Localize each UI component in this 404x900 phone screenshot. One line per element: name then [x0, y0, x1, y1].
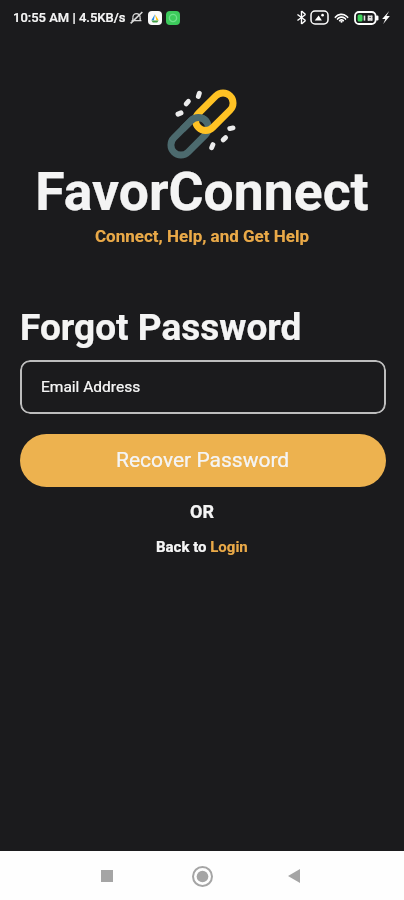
staticText: Forgot Password: [20, 306, 302, 349]
button[interactable]: Home: [181, 855, 223, 897]
staticText: OR: [0, 501, 404, 522]
staticText: Recover Password: [116, 448, 290, 473]
button[interactable]: Back: [273, 855, 315, 897]
staticText: FavorConnect: [0, 160, 404, 223]
button[interactable]: Recover Password: [20, 434, 386, 487]
button[interactable]: Recent apps: [86, 855, 128, 897]
staticText: Email Address: [41, 378, 141, 396]
staticText: Back to Login: [156, 538, 248, 556]
staticText: Connect, Help, and Get Help: [0, 226, 404, 246]
button[interactable]: Email Address: [20, 360, 386, 414]
button[interactable]: Back to Login: [148, 535, 256, 559]
staticText: 10:55 AM | 4.5KB/s: [13, 10, 126, 25]
